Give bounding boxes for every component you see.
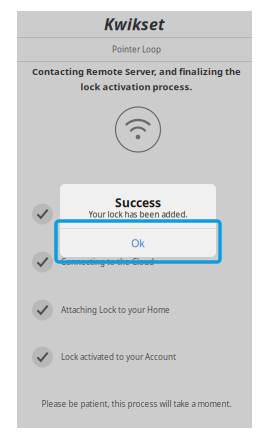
staticText: Pointer Loop (112, 44, 161, 55)
staticText: Attaching Lock to your Home (61, 305, 170, 315)
staticText: Ok (131, 236, 145, 250)
staticText: lock activation process. (80, 80, 192, 93)
staticText: Please be patient, this process will tak… (41, 399, 231, 409)
staticText: Lock activated to your Account (61, 352, 176, 362)
staticText: Success (115, 194, 161, 210)
staticText: Kwikset (104, 13, 165, 35)
button[interactable]: Ok (60, 229, 216, 257)
staticText: Contacting Remote Server, and finalizing… (32, 65, 241, 77)
staticText: Connecting to the Cloud (61, 257, 154, 267)
staticText: Your lock has been added. (88, 209, 187, 220)
staticText: Finding your Lock (61, 209, 127, 219)
